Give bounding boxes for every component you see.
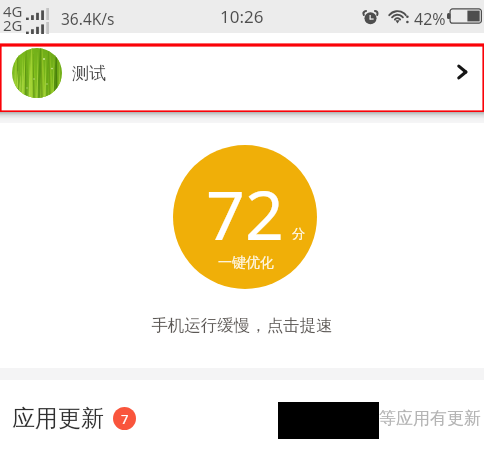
staticText: 7 [121, 410, 129, 428]
button[interactable]: 测试 [2, 47, 482, 110]
staticText: 手机运行缓慢，点击提速 [0, 315, 484, 336]
button[interactable]: 应用更新 [0, 380, 484, 449]
staticText: 一键优化 [218, 254, 274, 272]
staticText: 72 [206, 167, 284, 260]
other: Battery [447, 7, 482, 25]
staticText: 应用更新 [12, 404, 104, 433]
button[interactable]: 72 [173, 145, 317, 289]
staticText: 等应用有更新 [379, 408, 481, 429]
staticText: 10:26 [220, 5, 264, 28]
other: Open profile [454, 64, 470, 80]
staticText: 36.4K/s [61, 8, 115, 29]
other: Wifi [386, 8, 409, 25]
staticText: 分 [292, 225, 305, 241]
staticText: 测试 [72, 63, 106, 84]
staticText: 2G [3, 15, 23, 35]
other: Alarm [362, 8, 379, 25]
staticText: 4G [3, 1, 23, 21]
staticText: 42% [414, 8, 446, 30]
